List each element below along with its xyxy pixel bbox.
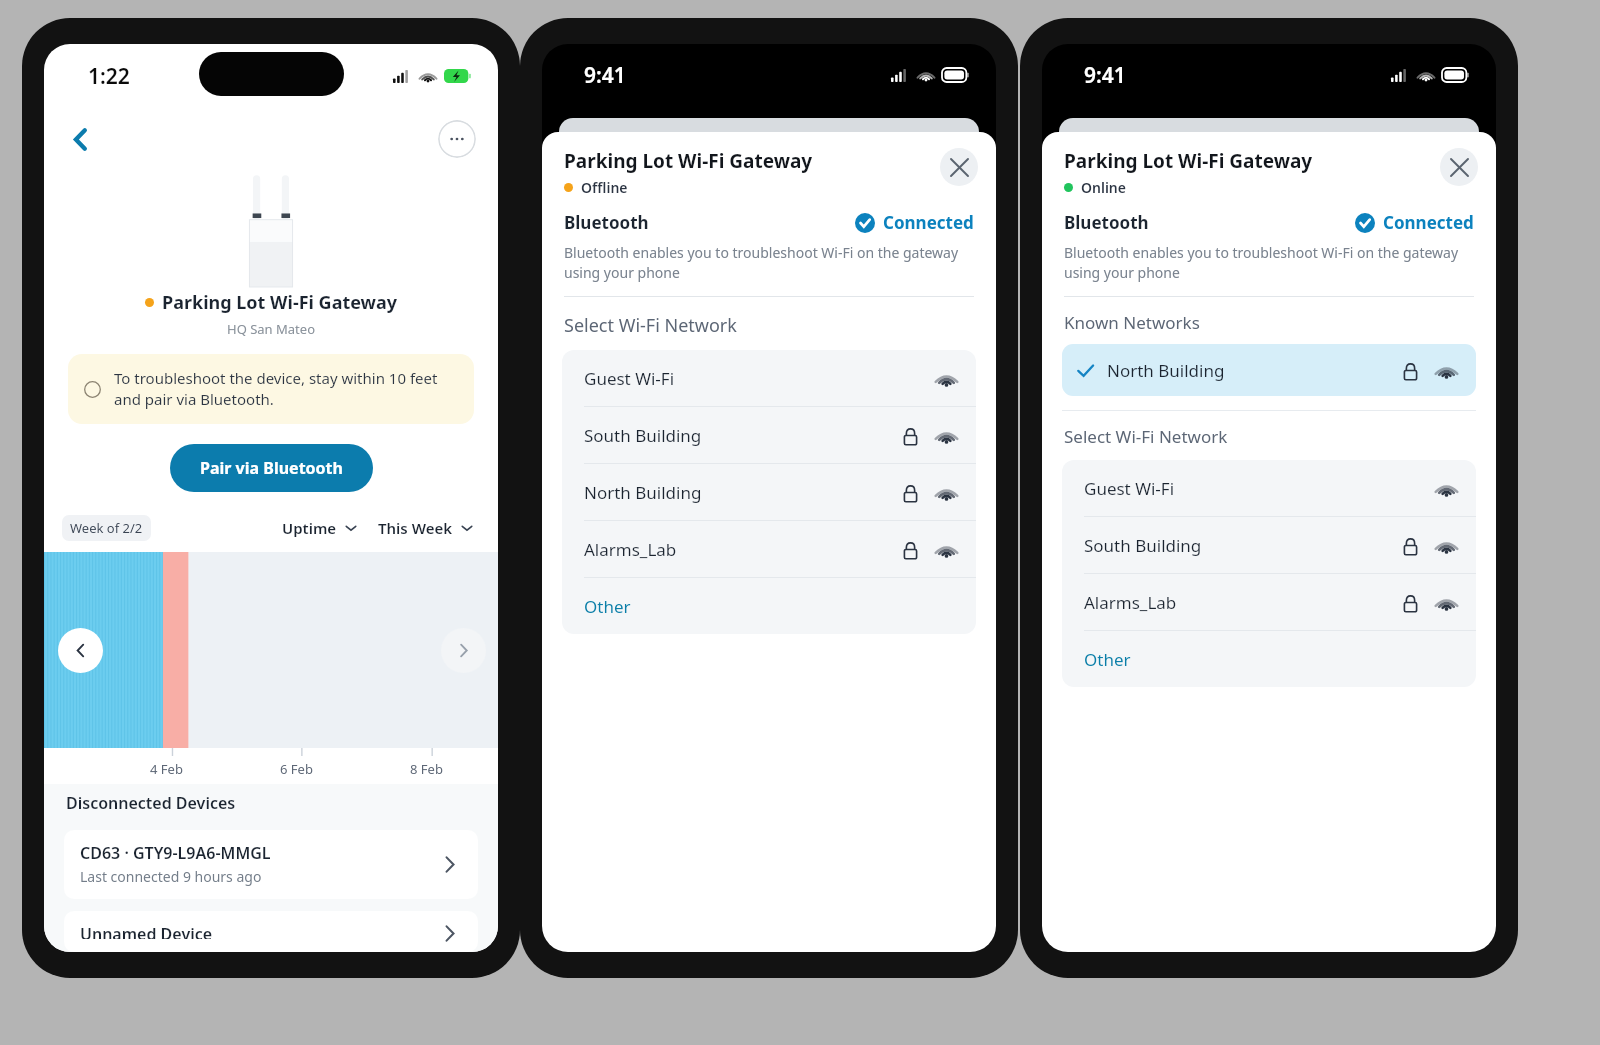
staticText: This Week <box>378 518 453 538</box>
staticText: 6 Feb <box>280 760 313 778</box>
staticText: 9:41 <box>1084 61 1126 90</box>
staticText: Parking Lot Wi-Fi Gateway <box>564 148 813 174</box>
staticText: Alarms_Lab <box>584 538 900 561</box>
button[interactable]: Back <box>58 117 102 161</box>
button[interactable]: South Building <box>1062 517 1476 573</box>
staticText: Bluetooth enables you to troubleshoot Wi… <box>1064 243 1470 282</box>
button[interactable]: To troubleshoot the device, stay within … <box>68 354 474 424</box>
button[interactable]: Previous week <box>58 628 103 673</box>
button[interactable]: Week of 2/2 <box>62 515 151 541</box>
button[interactable]: Guest Wi-Fi <box>1062 460 1476 516</box>
staticText: HQ San Mateo <box>44 320 498 338</box>
button[interactable]: Alarms_Lab <box>1062 574 1476 630</box>
staticText: Connected <box>1383 211 1474 234</box>
staticText: Guest Wi-Fi <box>584 367 900 390</box>
staticText: Bluetooth <box>1064 211 1355 234</box>
staticText: Alarms_Lab <box>1084 591 1400 614</box>
staticText: South Building <box>1084 534 1400 557</box>
staticText: Week of 2/2 <box>70 519 143 537</box>
button[interactable]: Uptime <box>278 514 362 542</box>
staticText: North Building <box>584 481 900 504</box>
staticText: Other <box>1084 648 1458 671</box>
button[interactable]: This Week <box>374 514 478 542</box>
staticText: Parking Lot Wi-Fi Gateway <box>162 290 398 315</box>
button[interactable]: CD63 · GTY9-L9A6-MMGL <box>64 830 478 899</box>
staticText: 1:22 <box>88 62 130 91</box>
button[interactable]: Guest Wi-Fi <box>562 350 976 406</box>
staticText: Offline <box>581 178 628 197</box>
staticText: Pair via Bluetooth <box>200 457 343 479</box>
staticText: Guest Wi-Fi <box>1084 477 1400 500</box>
button[interactable]: Close <box>940 148 978 186</box>
staticText: South Building <box>584 424 900 447</box>
button[interactable]: Next week <box>441 628 486 673</box>
button[interactable]: Pair via Bluetooth <box>170 444 373 492</box>
staticText: Known Networks <box>1064 311 1200 334</box>
staticText: Parking Lot Wi-Fi Gateway <box>1064 148 1313 174</box>
button[interactable]: North Building <box>562 464 976 520</box>
staticText: Uptime <box>282 518 337 538</box>
staticText: 4 Feb <box>150 760 183 778</box>
button[interactable]: North Building <box>1062 344 1476 396</box>
staticText: Select Wi-Fi Network <box>1064 425 1228 448</box>
staticText: Connected <box>883 211 974 234</box>
button[interactable]: Other <box>1062 631 1476 687</box>
staticText: Bluetooth <box>564 211 855 234</box>
staticText: CD63 · GTY9-L9A6-MMGL <box>80 842 271 864</box>
staticText: Other <box>584 595 958 618</box>
button[interactable]: Other <box>562 578 976 634</box>
button[interactable]: Unnamed Device <box>64 911 478 952</box>
button[interactable]: Close <box>1440 148 1478 186</box>
staticText: 8 Feb <box>410 760 443 778</box>
staticText: To troubleshoot the device, stay within … <box>114 368 454 410</box>
button[interactable]: More options <box>438 120 476 158</box>
button[interactable]: South Building <box>562 407 976 463</box>
staticText: Online <box>1081 178 1126 197</box>
staticText: 9:41 <box>584 61 626 90</box>
staticText: Unnamed Device <box>80 923 213 939</box>
staticText: Disconnected Devices <box>66 792 236 814</box>
button[interactable]: Alarms_Lab <box>562 521 976 577</box>
staticText: Bluetooth enables you to troubleshoot Wi… <box>564 243 970 282</box>
staticText: North Building <box>1107 359 1400 382</box>
staticText: Last connected 9 hours ago <box>80 867 262 886</box>
staticText: Select Wi-Fi Network <box>564 313 737 338</box>
